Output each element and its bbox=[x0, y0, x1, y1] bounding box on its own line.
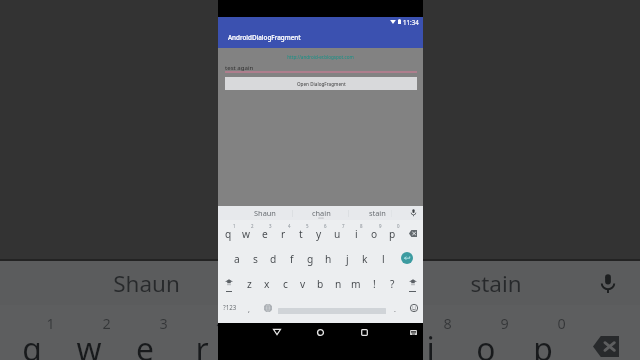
staticText: 3 bbox=[269, 223, 272, 229]
button[interactable]: z bbox=[240, 271, 258, 297]
button[interactable]: Recent apps bbox=[355, 323, 373, 341]
staticText: 2 bbox=[102, 314, 111, 334]
button[interactable]: ! bbox=[365, 271, 383, 297]
staticText: 5 bbox=[273, 314, 282, 334]
button[interactable]: chain suggestion bbox=[296, 206, 346, 220]
staticText: x bbox=[264, 277, 270, 291]
staticText: 5 bbox=[306, 223, 309, 229]
button[interactable]: Back bbox=[268, 323, 286, 341]
button[interactable]: Open DialogFragment bbox=[225, 77, 417, 90]
staticText: y bbox=[308, 327, 325, 360]
staticText: q bbox=[225, 227, 232, 241]
button[interactable]: Backspace bbox=[402, 220, 423, 246]
staticText: y bbox=[316, 227, 322, 241]
staticText: 3 bbox=[159, 314, 168, 334]
button[interactable]: u bbox=[328, 221, 346, 247]
button[interactable]: t bbox=[292, 221, 310, 247]
button[interactable]: Home bbox=[311, 323, 329, 341]
staticText: ?123 bbox=[223, 303, 237, 311]
button[interactable]: stain suggestion bbox=[357, 206, 397, 220]
staticText: o bbox=[476, 327, 496, 360]
staticText: d bbox=[270, 252, 277, 266]
button[interactable]: Shift bbox=[218, 269, 240, 295]
button[interactable]: Emoji bbox=[405, 295, 422, 321]
staticText: 0 bbox=[397, 223, 400, 229]
staticText: stain bbox=[470, 268, 522, 299]
button[interactable]: i bbox=[347, 221, 365, 247]
button[interactable]: o bbox=[365, 221, 383, 247]
button[interactable]: h bbox=[319, 246, 337, 272]
staticText: u bbox=[363, 327, 383, 360]
button[interactable]: Space bbox=[278, 296, 386, 319]
staticText: w bbox=[76, 327, 102, 360]
button[interactable]: k bbox=[356, 246, 374, 272]
staticText: Shaun bbox=[254, 208, 276, 218]
staticText: n bbox=[335, 277, 342, 291]
staticText: 6 bbox=[324, 223, 327, 229]
staticText: q bbox=[22, 327, 42, 360]
button[interactable]: r bbox=[274, 221, 292, 247]
staticText: stain bbox=[369, 208, 386, 218]
staticText: r bbox=[281, 227, 286, 241]
button[interactable]: Enter bbox=[397, 245, 417, 271]
staticText: m bbox=[351, 277, 361, 291]
staticText: 7 bbox=[342, 223, 345, 229]
staticText: 1 bbox=[46, 314, 55, 334]
staticText: , bbox=[248, 305, 250, 315]
staticText: e bbox=[262, 227, 268, 241]
button[interactable]: Comma bbox=[240, 297, 257, 323]
staticText: e bbox=[136, 327, 154, 360]
staticText: Open DialogFragment bbox=[297, 81, 346, 87]
button[interactable]: v bbox=[294, 271, 312, 297]
button[interactable]: Change language bbox=[259, 295, 276, 321]
button[interactable]: x bbox=[258, 271, 276, 297]
button[interactable]: b bbox=[311, 271, 329, 297]
button[interactable]: Shift bbox=[402, 269, 424, 295]
staticText: v bbox=[300, 277, 306, 291]
button[interactable]: m bbox=[347, 271, 365, 297]
button[interactable]: p bbox=[383, 221, 401, 247]
staticText: i bbox=[355, 227, 358, 241]
staticText: 1 bbox=[233, 223, 236, 229]
button[interactable]: e bbox=[256, 221, 274, 247]
staticText: chain bbox=[312, 208, 331, 218]
button[interactable]: l bbox=[374, 246, 392, 272]
button[interactable]: w bbox=[237, 221, 255, 247]
staticText: g bbox=[307, 252, 314, 266]
button[interactable]: j bbox=[338, 246, 356, 272]
button[interactable]: Numbers and symbols bbox=[218, 294, 241, 320]
button[interactable]: y bbox=[310, 221, 328, 247]
staticText: z bbox=[247, 277, 252, 291]
staticText: j bbox=[346, 252, 349, 266]
staticText: http://android-er.blogspot.com bbox=[287, 54, 354, 60]
button[interactable]: s bbox=[246, 246, 264, 272]
button[interactable]: Period bbox=[387, 297, 402, 323]
staticText: s bbox=[253, 252, 258, 266]
staticText: p bbox=[533, 327, 553, 360]
button[interactable]: a bbox=[228, 246, 246, 272]
staticText: f bbox=[290, 252, 294, 266]
staticText: . bbox=[394, 305, 396, 315]
button[interactable]: Voice input bbox=[404, 205, 422, 219]
staticText: 2 bbox=[251, 223, 254, 229]
staticText: 6 bbox=[330, 314, 339, 334]
button[interactable]: q bbox=[219, 221, 237, 247]
staticText: b bbox=[317, 277, 324, 291]
button[interactable]: g bbox=[301, 246, 319, 272]
staticText: 0 bbox=[557, 314, 566, 334]
button[interactable]: f bbox=[283, 246, 301, 272]
staticText: 9 bbox=[500, 314, 509, 334]
staticText: u bbox=[334, 227, 341, 241]
button[interactable]: d bbox=[264, 246, 282, 272]
button[interactable]: n bbox=[329, 271, 347, 297]
staticText: p bbox=[389, 227, 396, 241]
staticText: a bbox=[234, 252, 240, 266]
button[interactable]: c bbox=[276, 271, 294, 297]
button[interactable]: Hide keyboard bbox=[404, 323, 422, 341]
staticText: i bbox=[426, 327, 435, 360]
staticText: 8 bbox=[360, 223, 363, 229]
button[interactable]: Shaun suggestion bbox=[237, 206, 293, 220]
button[interactable]: ? bbox=[383, 271, 401, 297]
staticText: l bbox=[382, 252, 385, 266]
